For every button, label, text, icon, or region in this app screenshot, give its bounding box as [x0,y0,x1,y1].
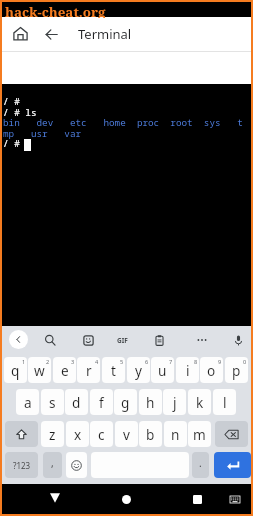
staticText: / # [3,95,20,108]
staticText: ?123 [13,460,31,471]
button[interactable]: d [65,389,88,415]
button[interactable]: p [225,357,248,383]
staticText: l [223,393,227,412]
staticText: f [99,393,104,412]
button[interactable]: Back [45,488,65,508]
button[interactable]: z [41,421,64,447]
button[interactable]: t [102,357,125,383]
button[interactable]: Back [37,20,65,48]
button[interactable]: f [90,389,113,415]
button[interactable]: a [16,389,39,415]
button[interactable]: clip [150,331,168,349]
staticText: 4 [95,358,99,366]
staticText: mp usr var [3,127,82,140]
button[interactable]: x [66,421,89,447]
button[interactable]: Home [6,19,34,47]
button[interactable]: s [41,389,64,415]
button[interactable]: g [114,389,137,415]
staticText: x [74,425,82,444]
staticText: r [86,361,92,380]
button[interactable]: Backspace [215,421,248,447]
staticText: h [146,393,155,412]
staticText: 0 [243,358,247,366]
button[interactable]: search [41,331,59,349]
staticText: u [158,361,167,380]
button[interactable]: Keyboard [226,490,244,508]
staticText: 8 [194,358,198,366]
staticText: / # [3,137,20,150]
staticText: k [196,393,204,412]
staticText: g [121,393,130,412]
button[interactable]: m [188,421,211,447]
staticText: n [171,425,180,444]
staticText: 3 [71,358,75,366]
staticText: 9 [218,358,222,366]
button[interactable]: v [115,421,138,447]
staticText: 7 [169,358,173,366]
staticText: z [49,425,56,444]
staticText: Terminal [78,25,132,43]
staticText: i [186,361,190,380]
staticText: 2 [46,358,50,366]
staticText: v [123,425,130,444]
staticText: m [193,425,206,444]
staticText: a [24,393,32,412]
staticText: p [232,361,241,380]
button[interactable]: r [77,357,100,383]
button[interactable]: more [193,331,211,349]
button[interactable]: Enter [214,452,251,478]
button[interactable]: Home [116,489,136,509]
button[interactable]: i [176,357,199,383]
staticText: y [135,361,142,380]
staticText: 5 [120,358,124,366]
button[interactable]: Emoji [66,452,87,478]
staticText: o [207,361,216,380]
button[interactable]: mic [229,331,247,349]
staticText: s [49,393,56,412]
staticText: hack-cheat.org [5,3,106,18]
staticText: c [98,425,105,444]
button[interactable]: l [213,389,236,415]
button[interactable]: q [4,357,27,383]
staticText: q [11,361,20,380]
button[interactable]: w [28,357,51,383]
button[interactable]: n [164,421,187,447]
button[interactable]: e [53,357,76,383]
staticText: t [111,361,116,380]
button[interactable]: Recents [187,489,207,509]
button[interactable]: b [139,421,162,447]
button[interactable]: Period [192,452,209,478]
staticText: / # ls [3,106,37,119]
button[interactable]: k [188,389,211,415]
button[interactable]: h [139,389,162,415]
staticText: w [34,361,45,380]
button[interactable]: u [151,357,174,383]
button[interactable]: c [90,421,113,447]
button[interactable]: Comma [43,452,62,478]
button[interactable]: o [200,357,223,383]
button[interactable]: ?123 [5,452,38,478]
staticText: bin dev etc home proc root sys t [3,116,243,129]
button[interactable]: sticker [79,331,97,349]
staticText: . [199,456,202,470]
staticText: GIF [117,336,128,345]
button[interactable]: Previous [9,330,28,349]
staticText: , [51,456,54,470]
staticText: j [173,393,177,412]
staticText: 6 [145,358,149,366]
button[interactable]: y [127,357,150,383]
staticText: 1 [22,358,26,366]
button[interactable]: Shift [5,421,38,447]
staticText: d [72,393,81,412]
staticText: b [146,425,155,444]
button[interactable]: gif [113,331,131,349]
staticText: e [61,361,69,380]
button[interactable]: j [163,389,186,415]
